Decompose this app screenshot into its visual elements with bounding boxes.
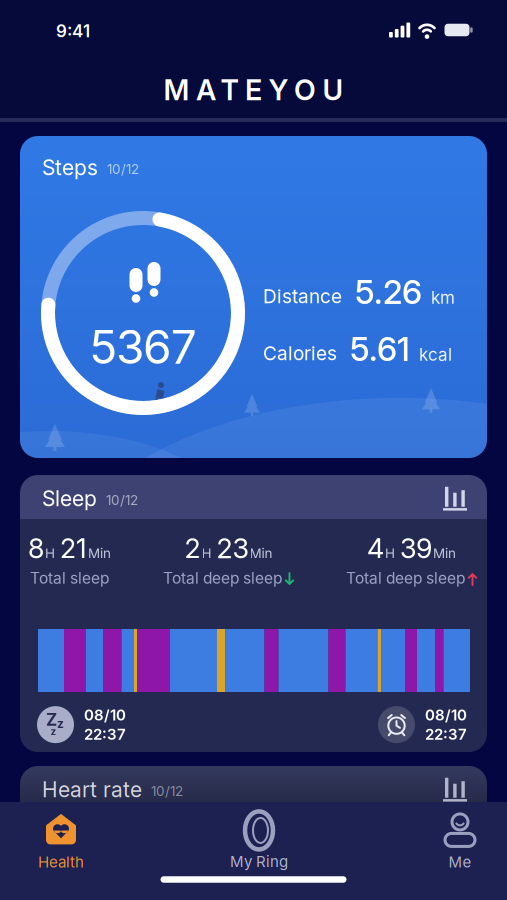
staticText: z (50, 726, 56, 738)
staticText: 22:37 (425, 725, 467, 743)
button[interactable]: Me (405, 811, 507, 873)
staticText: z (57, 716, 64, 731)
button[interactable]: Heart rate (20, 766, 487, 826)
staticText: Distance (263, 285, 342, 308)
button[interactable]: Health (6, 811, 116, 873)
staticText: 2 (184, 532, 200, 565)
staticText: 10/12 (107, 161, 139, 177)
staticText: H (385, 545, 395, 562)
staticText: 08/10 (84, 706, 126, 724)
staticText: Min (433, 545, 456, 562)
button[interactable]: Steps (20, 136, 487, 458)
staticText: km (431, 287, 455, 308)
staticText: 5.61 (350, 329, 410, 369)
staticText: Min (88, 545, 111, 562)
staticText: Z (46, 709, 57, 730)
staticText: Total sleep (30, 569, 109, 587)
staticText: 23 (216, 532, 248, 565)
staticText: My Ring (230, 852, 288, 870)
staticText: Total deep sleep (346, 569, 465, 587)
staticText: 22:37 (84, 725, 126, 743)
staticText: 39 (400, 532, 432, 565)
staticText: H (45, 545, 55, 562)
staticText: Calories (263, 342, 337, 365)
staticText: Sleep (42, 486, 97, 511)
staticText: 21 (60, 532, 87, 565)
staticText: Heart rate (42, 777, 142, 802)
staticText: Steps (42, 155, 98, 180)
staticText: Me (448, 853, 471, 871)
staticText: 8 (28, 532, 44, 565)
staticText: H (201, 545, 211, 562)
staticText: MATEYOU (163, 73, 343, 107)
staticText: 10/12 (151, 783, 183, 799)
staticText: 5.26 (355, 272, 422, 312)
staticText: Min (249, 545, 272, 562)
staticText: Total deep sleep (163, 569, 282, 587)
staticText: 5367 (89, 319, 197, 375)
staticText: 10/12 (106, 492, 138, 508)
staticText: kcal (419, 344, 452, 365)
button[interactable]: Sleep (20, 475, 487, 752)
staticText: 4 (367, 532, 384, 565)
staticText: 9:41 (56, 21, 90, 41)
staticText: 08/10 (425, 706, 467, 724)
button[interactable]: My Ring (204, 808, 314, 874)
staticText: Health (38, 853, 84, 871)
